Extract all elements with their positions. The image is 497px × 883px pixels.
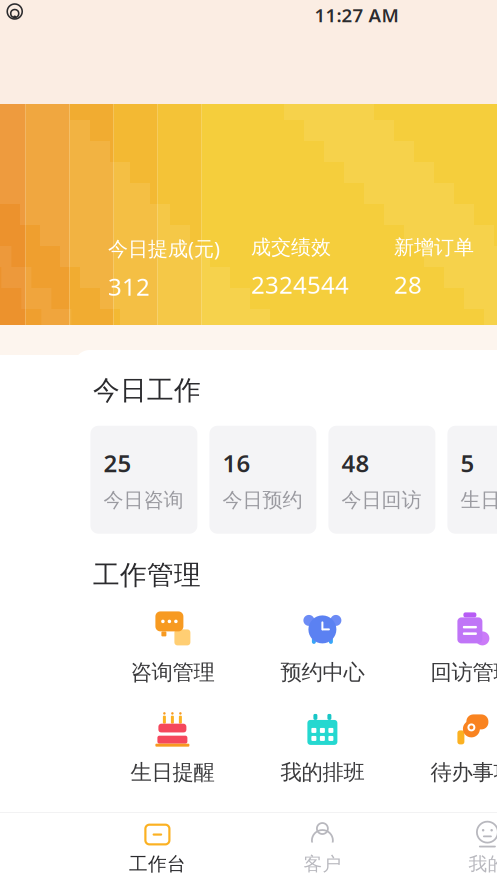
button[interactable]: 生日提醒	[97, 705, 247, 791]
staticText: 25	[103, 447, 131, 479]
staticText: 我的	[468, 852, 497, 875]
staticText: 今日预约	[222, 488, 302, 512]
staticText: 回访管理	[430, 659, 497, 686]
button[interactable]: 预约中心	[247, 605, 397, 691]
button[interactable]: 25	[90, 426, 197, 534]
staticText: 今日工作	[93, 374, 201, 407]
staticText: 今日回访	[341, 488, 421, 512]
staticText: 我的排班	[280, 759, 364, 786]
button[interactable]: 咨询管理	[97, 605, 247, 691]
staticText: 客户	[303, 852, 341, 875]
button[interactable]: 工作台	[75, 817, 240, 879]
staticText: 16	[222, 447, 250, 479]
staticText: 今日提成(元)	[108, 235, 220, 262]
staticText: 生日提醒	[130, 759, 214, 786]
staticText: 咨询管理	[130, 659, 214, 686]
staticText: 生日提醒	[460, 488, 497, 512]
staticText: 待办事项	[430, 759, 497, 786]
staticText: 工作台	[129, 852, 186, 875]
button[interactable]: 48	[328, 426, 435, 534]
button[interactable]: 我的	[405, 817, 497, 879]
button[interactable]: 我的排班	[247, 705, 397, 791]
button[interactable]: 回访管理	[397, 605, 497, 691]
staticText: 今日咨询	[103, 488, 183, 512]
staticText: 11:27 AM	[314, 3, 398, 27]
staticText: 2324544	[251, 269, 349, 300]
button[interactable]: 16	[209, 426, 316, 534]
staticText: 5	[460, 447, 474, 479]
staticText: 48	[341, 447, 369, 479]
staticText: 工作管理	[93, 559, 201, 592]
button[interactable]: 5	[447, 426, 497, 534]
button[interactable]: 待办事项	[397, 705, 497, 791]
staticText: 新增订单	[394, 235, 474, 260]
staticText: 预约中心	[280, 659, 364, 686]
staticText: 28	[394, 269, 422, 300]
staticText: 312	[108, 271, 150, 302]
button[interactable]: 客户	[240, 817, 405, 879]
staticText: 成交绩效	[251, 235, 331, 260]
